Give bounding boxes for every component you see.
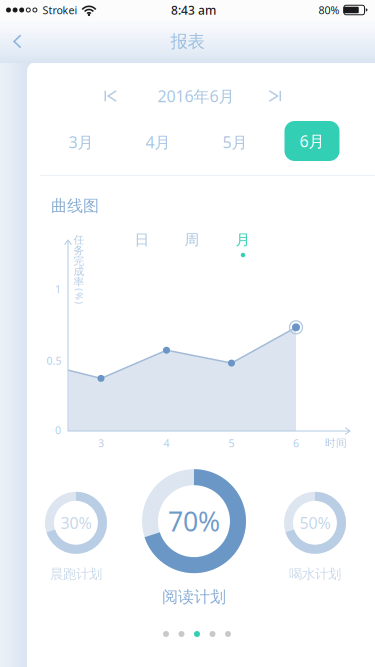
staticText: 5 [228,436,234,450]
staticText: 0 [55,423,61,437]
staticText: 3月 [68,131,93,153]
staticText: 日 [134,231,149,249]
staticText: 70% [168,503,220,539]
button[interactable]: Next [259,81,290,111]
staticText: 月 [235,231,250,249]
button[interactable]: 3月 [49,122,113,162]
staticText: 晨跑计划 [50,566,102,582]
staticText: 务 [73,244,84,257]
staticText: 时间 [325,436,347,449]
staticText: 任 [73,233,84,246]
staticText: 1 [55,282,61,296]
button[interactable]: 5月 [203,122,267,162]
staticText: 6 [293,436,299,450]
button[interactable]: 2016年6月 [149,79,242,113]
button[interactable]: 6月 [284,121,339,161]
staticText: 30% [60,512,91,533]
staticText: 2016年6月 [157,85,234,107]
button[interactable]: 50% [284,492,346,582]
staticText: % [75,290,83,302]
button[interactable]: 30% [45,492,107,582]
staticText: 5月 [222,131,247,153]
button[interactable]: 4月 [126,122,190,162]
staticText: 80% [318,3,339,17]
button[interactable]: 日 [120,228,164,260]
staticText: 6月 [299,130,324,152]
staticText: 周 [184,231,199,249]
staticText: ) [77,297,80,309]
staticText: 3 [98,436,104,450]
staticText: 曲线图 [51,196,99,216]
staticText: 喝水计划 [289,566,341,582]
button[interactable]: Back [0,20,36,63]
staticText: ( [77,284,80,296]
staticText: 率 [73,275,84,288]
button[interactable]: 月 [221,228,265,260]
staticText: 50% [299,512,330,533]
staticText: 成 [73,265,84,278]
button[interactable]: 周 [170,228,214,260]
staticText: 完 [73,254,84,267]
button[interactable]: 70% [142,469,246,607]
staticText: 4月 [145,131,170,153]
staticText: 4 [163,436,169,450]
staticText: 阅读计划 [162,587,226,607]
staticText: 0.5 [46,353,61,368]
staticText: 报表 [170,31,204,52]
staticText: Strokei [42,3,77,17]
button[interactable]: Previous [95,81,126,111]
staticText: 8:43 am [171,2,216,18]
